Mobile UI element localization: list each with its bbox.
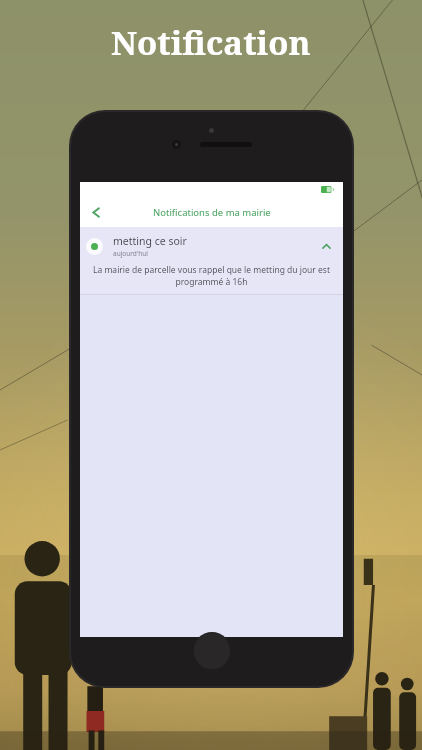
staticText: La mairie de parcelle vous rappel que le… bbox=[86, 264, 337, 288]
button[interactable]: Back bbox=[84, 200, 108, 224]
staticText: Notifications de ma mairie bbox=[153, 206, 271, 219]
staticText: metting ce soir bbox=[113, 234, 187, 248]
button[interactable]: Collapse bbox=[317, 237, 335, 255]
button[interactable]: metting ce soir bbox=[80, 227, 343, 295]
staticText: Notification bbox=[111, 20, 311, 65]
button[interactable]: Home bbox=[193, 632, 231, 670]
staticText: aujourd'hui bbox=[113, 249, 149, 258]
